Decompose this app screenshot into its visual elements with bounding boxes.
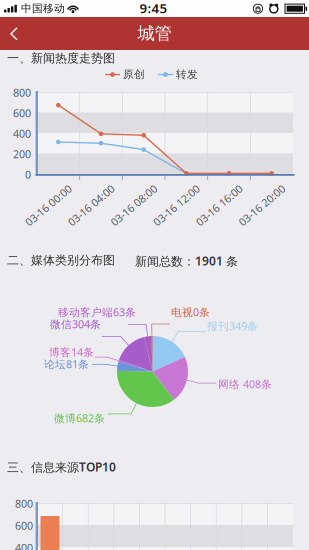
staticText: 二、媒体类别分布图 xyxy=(7,253,115,268)
staticText: 200 xyxy=(13,147,31,161)
staticText: 600 xyxy=(15,518,33,533)
staticText: 800 xyxy=(13,85,31,100)
staticText: 转发 xyxy=(176,68,198,81)
staticText: 新闻总数：1901 条 xyxy=(135,253,238,269)
staticText: 报刊349条 xyxy=(207,319,258,333)
staticText: 微博682条 xyxy=(54,411,105,425)
staticText: 0 xyxy=(25,167,31,182)
staticText: 微信304条 xyxy=(50,317,101,331)
button[interactable]: 返回 xyxy=(0,17,40,50)
staticText: 网络 408条 xyxy=(218,377,272,391)
staticText: 电视0条 xyxy=(171,305,210,319)
staticText: 中国移动 xyxy=(21,2,65,15)
staticText: 400 xyxy=(15,540,33,550)
staticText: 03-16 04:00 xyxy=(66,209,123,223)
staticText: 博客14条 xyxy=(49,345,94,359)
staticText: 800 xyxy=(15,496,33,511)
staticText: 03-16 08:00 xyxy=(109,209,166,223)
staticText: 03-16 00:00 xyxy=(24,209,81,223)
staticText: 600 xyxy=(13,106,31,120)
staticText: 三、信息来源TOP10 xyxy=(7,459,116,475)
staticText: 400 xyxy=(13,126,31,141)
staticText: 03-16 20:00 xyxy=(237,209,294,223)
staticText: 一、新闻热度走势图 xyxy=(7,51,115,66)
staticText: 03-16 12:00 xyxy=(152,209,209,223)
staticText: 03-16 16:00 xyxy=(194,209,251,223)
staticText: 原创 xyxy=(123,68,145,81)
staticText: 论坛81条 xyxy=(44,357,89,371)
staticText: 移动客户端63条 xyxy=(58,305,136,319)
staticText: 9:45 xyxy=(139,0,167,17)
staticText: 城管 xyxy=(137,23,171,44)
